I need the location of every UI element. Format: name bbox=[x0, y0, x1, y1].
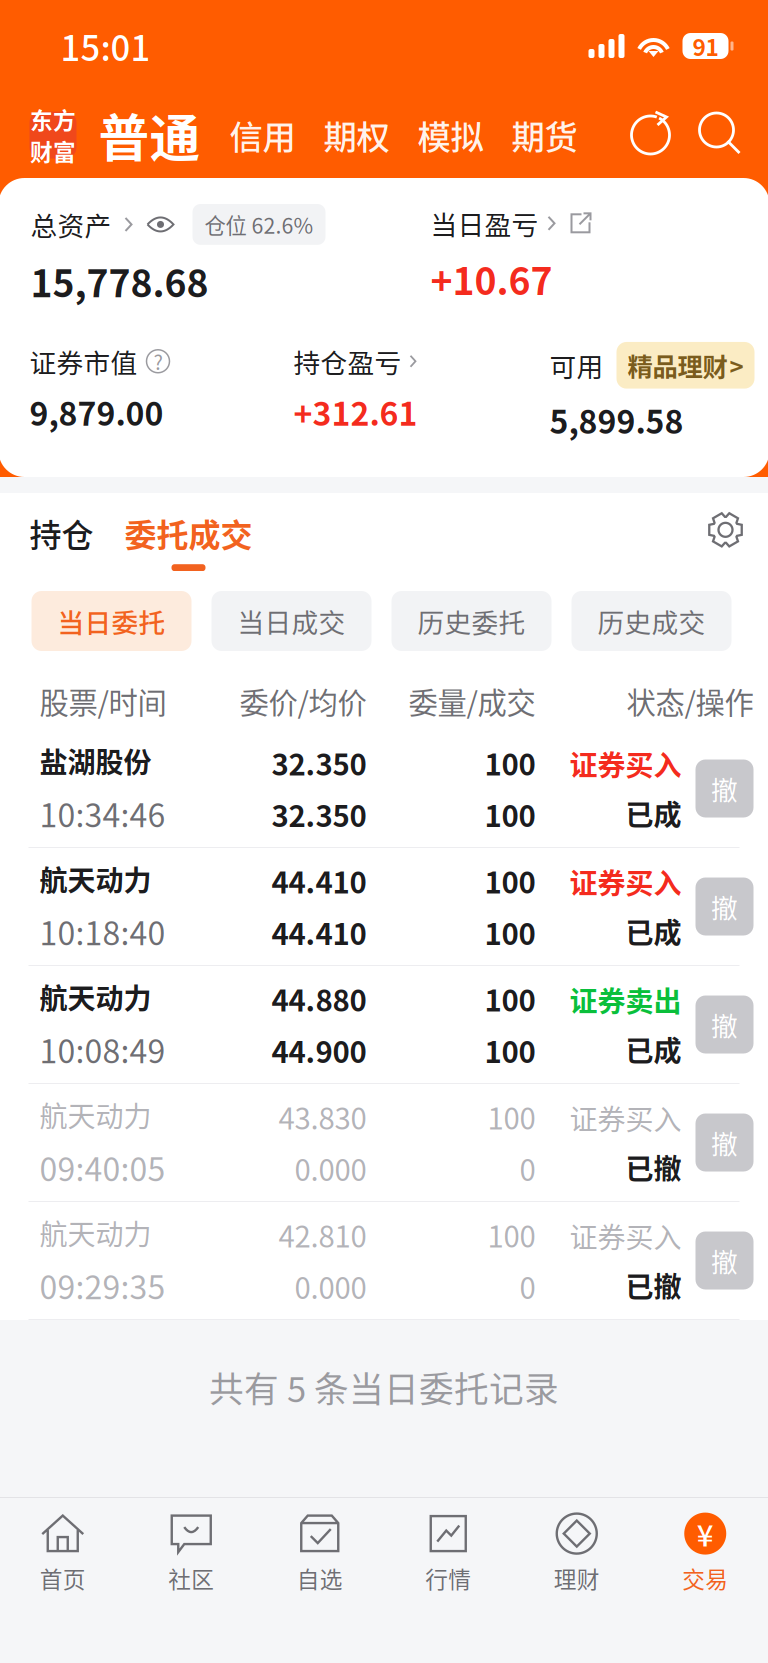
staticText: 32.350 bbox=[271, 793, 366, 835]
staticText: 股票/时间 bbox=[39, 680, 166, 722]
button[interactable]: 普通 bbox=[76, 98, 200, 172]
button[interactable]: 航天动力 bbox=[0, 1084, 768, 1202]
staticText: 91 bbox=[692, 30, 718, 62]
staticText: 10:18:40 bbox=[39, 908, 165, 954]
staticText: 100 bbox=[484, 741, 535, 784]
staticText: 100 bbox=[484, 1029, 535, 1071]
staticText: 已撤 bbox=[625, 1147, 681, 1187]
staticText: 0.000 bbox=[294, 1147, 366, 1189]
staticText: 44.880 bbox=[271, 977, 366, 1020]
staticText: 期权 bbox=[323, 111, 389, 159]
staticText: 航天动力 bbox=[39, 1095, 151, 1135]
staticText: 15:01 bbox=[60, 21, 150, 71]
staticText: 100 bbox=[487, 1095, 535, 1138]
staticText: 100 bbox=[484, 793, 535, 835]
staticText: 社区 bbox=[168, 1562, 214, 1594]
staticText: 撤 bbox=[711, 769, 738, 808]
button[interactable]: 持仓 bbox=[0, 492, 93, 556]
staticText: 可用 bbox=[549, 346, 603, 385]
staticText: 0 bbox=[519, 1147, 535, 1189]
staticText: 期货 bbox=[511, 111, 577, 159]
staticText: 交易 bbox=[682, 1562, 728, 1594]
staticText: 已撤 bbox=[625, 1265, 681, 1305]
staticText: 当日成交 bbox=[237, 602, 345, 640]
staticText: +312.61 bbox=[293, 389, 417, 435]
button[interactable]: 航天动力 bbox=[0, 1202, 768, 1320]
button[interactable]: 期货 bbox=[483, 111, 577, 159]
staticText: 状态/操作 bbox=[626, 680, 753, 722]
staticText: 10:08:49 bbox=[39, 1026, 165, 1072]
staticText: 航天动力 bbox=[39, 1213, 151, 1253]
staticText: 5,899.58 bbox=[549, 397, 683, 443]
button[interactable]: 航天动力 bbox=[0, 848, 768, 966]
staticText: 10:34:46 bbox=[39, 790, 165, 836]
staticText: 行情 bbox=[425, 1562, 471, 1594]
staticText: 普通 bbox=[98, 98, 200, 172]
staticText: 09:29:35 bbox=[39, 1262, 165, 1308]
button[interactable]: 委托成交 bbox=[93, 492, 252, 571]
staticText: 证券卖出 bbox=[569, 979, 681, 1020]
button[interactable]: 自选 bbox=[255, 1502, 384, 1606]
staticText: 信用 bbox=[229, 111, 295, 159]
staticText: +10.67 bbox=[430, 252, 552, 306]
button[interactable]: ¥ bbox=[641, 1502, 768, 1606]
button[interactable]: 设置 bbox=[707, 492, 768, 548]
staticText: 32.350 bbox=[271, 741, 366, 784]
button[interactable]: 期权 bbox=[295, 111, 389, 159]
staticText: 100 bbox=[484, 911, 535, 953]
staticText: 精品理财 bbox=[627, 347, 727, 384]
button[interactable]: 搜索 bbox=[673, 111, 743, 159]
button[interactable]: 首页 bbox=[0, 1502, 127, 1606]
staticText: 证券买入 bbox=[569, 861, 681, 902]
button[interactable]: 行情 bbox=[384, 1502, 512, 1606]
button[interactable]: 盐湖股份 bbox=[0, 730, 768, 848]
staticText: 共有 5 条当日委托记录 bbox=[209, 1362, 559, 1412]
staticText: 当日盈亏 bbox=[430, 204, 538, 243]
button[interactable]: 信用 bbox=[200, 111, 295, 159]
staticText: 42.810 bbox=[278, 1213, 366, 1256]
button[interactable]: 历史委托 bbox=[391, 591, 551, 651]
staticText: 100 bbox=[487, 1213, 535, 1256]
staticText: 0.000 bbox=[294, 1265, 366, 1307]
staticText: 撤 bbox=[711, 1123, 738, 1162]
staticText: ¥ bbox=[697, 1512, 714, 1555]
staticText: 历史委托 bbox=[417, 602, 525, 640]
staticText: 撤 bbox=[711, 1241, 738, 1280]
staticText: 证券市值 bbox=[29, 342, 137, 380]
staticText: 盐湖股份 bbox=[39, 741, 151, 781]
staticText: 证券买入 bbox=[569, 743, 681, 784]
staticText: 自选 bbox=[297, 1562, 343, 1594]
staticText: 100 bbox=[484, 977, 535, 1020]
staticText: 44.410 bbox=[271, 911, 366, 953]
button[interactable]: 当日成交 bbox=[211, 591, 371, 651]
staticText: 撤 bbox=[711, 1005, 738, 1044]
staticText: > bbox=[729, 348, 743, 383]
staticText: 财富 bbox=[30, 134, 76, 167]
staticText: 证券买入 bbox=[569, 1215, 681, 1256]
staticText: 委托成交 bbox=[124, 510, 252, 556]
staticText: 已成 bbox=[625, 793, 681, 833]
staticText: 东方 bbox=[30, 103, 76, 135]
staticText: 撤 bbox=[711, 887, 738, 926]
staticText: 15,778.68 bbox=[30, 254, 208, 308]
button[interactable]: 航天动力 bbox=[0, 966, 768, 1084]
button[interactable]: 理财 bbox=[512, 1502, 641, 1606]
staticText: 持仓盈亏 bbox=[293, 342, 401, 380]
staticText: 44.410 bbox=[271, 859, 366, 902]
button[interactable]: 社区 bbox=[127, 1502, 255, 1606]
staticText: 44.900 bbox=[271, 1029, 366, 1071]
staticText: 持仓 bbox=[29, 510, 93, 556]
staticText: 0 bbox=[519, 1265, 535, 1307]
staticText: 历史成交 bbox=[597, 602, 705, 640]
staticText: 首页 bbox=[40, 1562, 86, 1594]
button[interactable]: 模拟 bbox=[389, 111, 483, 159]
button[interactable]: 当日委托 bbox=[31, 591, 191, 651]
button[interactable]: 历史成交 bbox=[571, 591, 731, 651]
staticText: 证券买入 bbox=[569, 1097, 681, 1138]
button[interactable]: 刷新 bbox=[627, 111, 673, 159]
staticText: 已成 bbox=[625, 1029, 681, 1069]
staticText: ? bbox=[153, 347, 162, 376]
staticText: 已成 bbox=[625, 911, 681, 951]
staticText: 航天动力 bbox=[39, 859, 151, 899]
staticText: 委量/成交 bbox=[408, 680, 535, 722]
